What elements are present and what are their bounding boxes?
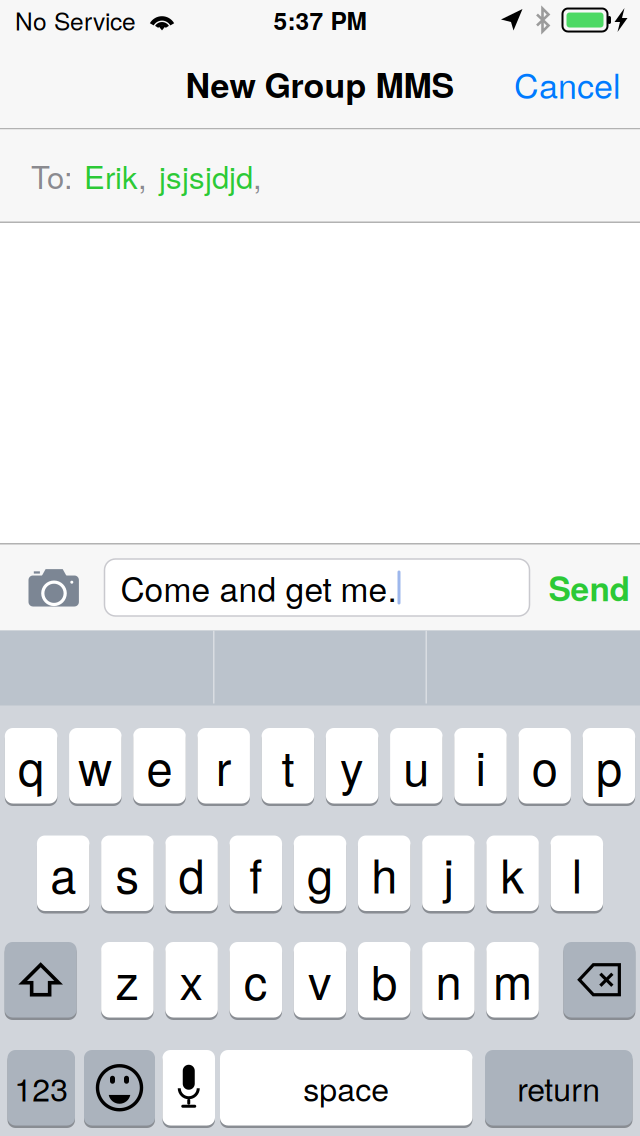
button[interactable]: Send xyxy=(537,544,640,630)
button[interactable]: d xyxy=(165,835,218,913)
button[interactable]: c xyxy=(229,942,282,1020)
staticText: 123 xyxy=(14,1065,68,1111)
staticText: h xyxy=(371,840,397,907)
staticText: jsjsjdjd xyxy=(159,153,253,198)
staticText: To: xyxy=(31,153,73,198)
staticText: l xyxy=(572,840,582,907)
staticText: return xyxy=(517,1065,600,1111)
staticText: t xyxy=(281,732,294,799)
staticText: No Service xyxy=(15,2,136,38)
button[interactable]: z xyxy=(101,942,154,1020)
button[interactable]: space xyxy=(220,1050,472,1128)
button[interactable]: r xyxy=(197,728,250,806)
button[interactable]: 123 xyxy=(7,1050,75,1128)
button[interactable]: p xyxy=(583,728,635,806)
button[interactable]: To: xyxy=(0,129,640,221)
staticText: 5:37 PM xyxy=(273,2,366,38)
button[interactable]: b xyxy=(358,942,410,1020)
button[interactable]: w xyxy=(69,728,122,806)
button[interactable]: j xyxy=(422,835,475,913)
button[interactable]: o xyxy=(518,728,571,806)
staticText: e xyxy=(146,732,172,799)
button[interactable]: Emoji xyxy=(84,1050,155,1128)
button[interactable]: t xyxy=(262,728,314,806)
button[interactable]: a xyxy=(37,835,89,913)
button[interactable]: y xyxy=(326,728,378,806)
staticText: i xyxy=(475,732,485,799)
staticText: v xyxy=(308,946,332,1013)
staticText: n xyxy=(435,946,461,1013)
staticText: , xyxy=(138,153,147,198)
staticText: Send xyxy=(548,563,629,611)
button[interactable]: g xyxy=(294,835,346,913)
button[interactable]: Shift xyxy=(5,942,77,1020)
staticText: o xyxy=(532,732,558,799)
staticText: m xyxy=(493,946,532,1013)
staticText: , xyxy=(253,153,262,198)
button[interactable]: x xyxy=(165,942,218,1020)
button[interactable]: s xyxy=(101,835,154,913)
button[interactable]: e xyxy=(133,728,186,806)
button[interactable]: n xyxy=(422,942,475,1020)
button[interactable]: return xyxy=(485,1050,632,1128)
button[interactable]: Dictation xyxy=(162,1050,215,1128)
button[interactable]: k xyxy=(486,835,539,913)
button[interactable]: f xyxy=(230,835,282,913)
button[interactable]: i xyxy=(454,728,507,806)
staticText: j xyxy=(443,840,453,907)
staticText: s xyxy=(115,840,139,907)
staticText: Come and get me. xyxy=(120,563,396,611)
staticText: y xyxy=(340,732,364,799)
staticText: space xyxy=(303,1065,389,1111)
staticText: r xyxy=(216,732,232,799)
button[interactable]: Delete xyxy=(563,942,635,1020)
staticText: g xyxy=(307,840,333,907)
staticText: x xyxy=(180,946,204,1013)
button[interactable]: u xyxy=(390,728,443,806)
staticText: Erik xyxy=(84,153,138,198)
button[interactable]: q xyxy=(5,728,57,806)
button[interactable]: v xyxy=(294,942,346,1020)
button[interactable]: m xyxy=(486,942,539,1020)
button[interactable]: h xyxy=(358,835,410,913)
staticText: f xyxy=(249,840,262,907)
staticText: d xyxy=(179,840,205,907)
staticText: u xyxy=(403,732,429,799)
staticText: a xyxy=(50,840,76,907)
staticText: p xyxy=(596,732,622,799)
staticText: New Group MMS xyxy=(185,60,454,108)
staticText: b xyxy=(371,946,397,1013)
staticText: k xyxy=(501,840,525,907)
staticText: q xyxy=(18,732,44,799)
button[interactable]: Camera xyxy=(0,544,104,630)
staticText: Cancel xyxy=(514,60,621,108)
button[interactable]: l xyxy=(550,835,603,913)
staticText: w xyxy=(78,732,112,799)
button[interactable]: Cancel xyxy=(451,40,640,128)
staticText: z xyxy=(115,946,139,1013)
staticText: c xyxy=(244,946,268,1013)
